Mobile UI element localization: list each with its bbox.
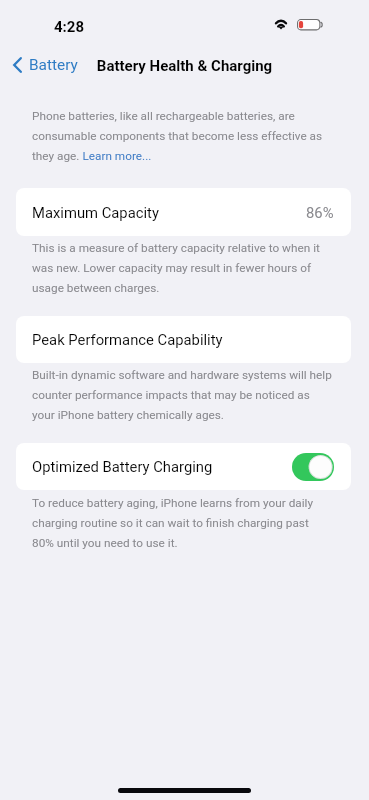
- staticText: Phone batteries, like all rechargeable b…: [32, 109, 333, 163]
- button[interactable]: Optimized Battery Charging: [16, 443, 351, 490]
- staticText: 4:28: [54, 18, 85, 36]
- staticText: To reduce battery aging, iPhone learns f…: [32, 496, 333, 550]
- staticText: Battery Health & Charging: [0, 57, 369, 75]
- button[interactable]: Optimized Battery Charging: [292, 453, 334, 481]
- button[interactable]: Maximum Capacity: [16, 188, 351, 236]
- button[interactable]: Peak Performance Capability: [16, 316, 351, 363]
- staticText: This is a measure of battery capacity re…: [32, 241, 333, 295]
- button[interactable]: Battery: [6, 52, 84, 78]
- staticText: Built-in dynamic software and hardware s…: [32, 368, 333, 422]
- staticText: Optimized Battery Charging: [32, 458, 213, 475]
- staticText: Maximum Capacity: [32, 204, 159, 221]
- staticText: 86%: [306, 204, 334, 221]
- staticText: Peak Performance Capability: [32, 331, 223, 348]
- staticText: Battery: [29, 56, 78, 74]
